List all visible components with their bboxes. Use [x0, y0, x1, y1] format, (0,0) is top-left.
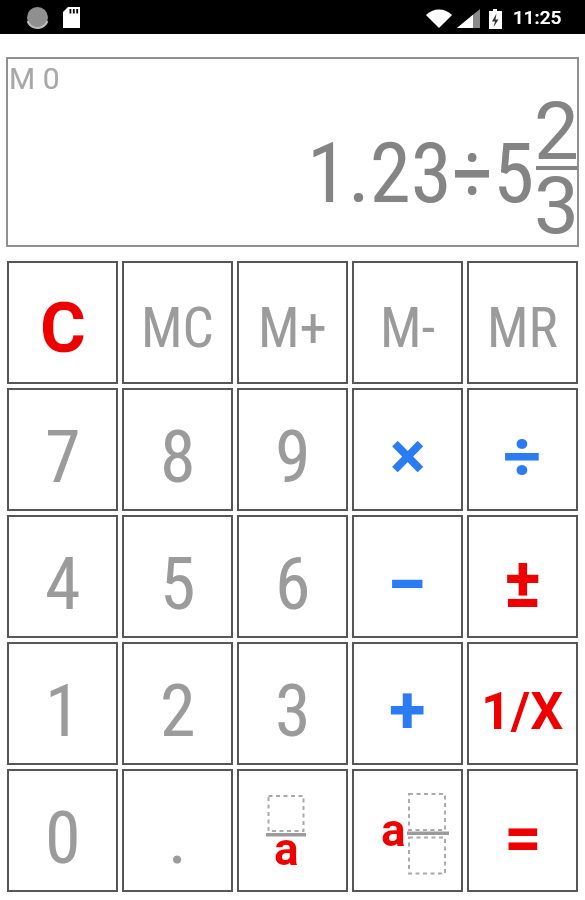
staticText: 9	[275, 415, 311, 499]
button[interactable]: a	[237, 769, 348, 892]
staticText: MC	[141, 296, 214, 360]
button[interactable]: M-	[352, 261, 463, 384]
staticText: MR	[487, 296, 558, 360]
staticText: 6	[275, 542, 311, 626]
staticText: a	[274, 822, 299, 876]
staticText: +	[389, 671, 426, 750]
staticText: 5	[160, 542, 196, 626]
staticText: 8	[160, 415, 196, 499]
button[interactable]: +	[352, 642, 463, 765]
button[interactable]: MC	[122, 261, 233, 384]
button[interactable]: =	[467, 769, 578, 892]
button[interactable]: ÷	[467, 388, 578, 511]
button[interactable]: MR	[467, 261, 578, 384]
button[interactable]: 7	[7, 388, 118, 511]
staticText: =	[504, 799, 542, 876]
button[interactable]: 9	[237, 388, 348, 511]
staticText: ×	[390, 417, 426, 496]
staticText: 7	[45, 415, 81, 499]
staticText: ±	[504, 542, 542, 624]
staticText: 4	[45, 542, 81, 626]
button[interactable]: 3	[237, 642, 348, 765]
staticText: 2	[534, 85, 579, 179]
staticText: 3	[275, 669, 311, 753]
button[interactable]: 5	[122, 515, 233, 638]
button[interactable]: 8	[122, 388, 233, 511]
staticText: 11:25	[513, 6, 562, 28]
staticText: 2	[160, 669, 196, 753]
button[interactable]: a	[352, 769, 463, 892]
staticText: 1	[45, 669, 81, 753]
staticText: −	[387, 542, 428, 626]
staticText: a	[381, 803, 406, 857]
button[interactable]: 1/X	[467, 642, 578, 765]
staticText: 0	[45, 796, 81, 880]
staticText: .	[168, 796, 187, 880]
button[interactable]: 4	[7, 515, 118, 638]
staticText: 3	[534, 159, 579, 253]
button[interactable]: ±	[467, 515, 578, 638]
button[interactable]: 1	[7, 642, 118, 765]
staticText: M+	[258, 296, 327, 360]
button[interactable]: 2	[122, 642, 233, 765]
button[interactable]: C	[7, 261, 118, 384]
button[interactable]: ×	[352, 388, 463, 511]
button[interactable]: 6	[237, 515, 348, 638]
staticText: 1/X	[481, 681, 564, 742]
staticText: ÷	[503, 417, 542, 496]
staticText: 1.23÷5	[307, 125, 535, 222]
button[interactable]: 0	[7, 769, 118, 892]
staticText: C	[40, 287, 86, 369]
button[interactable]: M+	[237, 261, 348, 384]
staticText: M-	[380, 296, 436, 360]
button[interactable]: .	[122, 769, 233, 892]
button[interactable]: −	[352, 515, 463, 638]
staticText: M 0	[9, 61, 60, 96]
